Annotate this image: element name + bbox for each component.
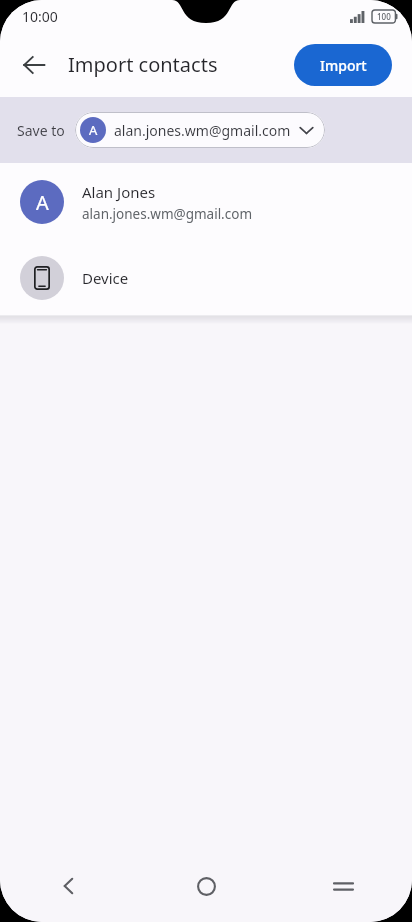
staticText: alan.jones.wm@gmail.com <box>114 121 291 140</box>
button[interactable]: A <box>0 163 412 241</box>
staticText: Import contacts <box>68 51 218 78</box>
staticText: alan.jones.wm@gmail.com <box>82 205 253 223</box>
staticText: 10:00 <box>22 7 58 26</box>
button[interactable]: A <box>75 112 325 148</box>
button[interactable]: Device <box>0 241 412 315</box>
button[interactable]: Back <box>0 858 138 914</box>
button[interactable]: Import <box>294 44 392 86</box>
staticText: Alan Jones <box>82 182 156 202</box>
staticText: Import <box>320 56 367 75</box>
staticText: A <box>89 121 98 139</box>
staticText: Device <box>82 268 129 288</box>
button[interactable]: Home <box>138 858 275 914</box>
button[interactable]: Back <box>10 41 58 89</box>
staticText: A <box>36 189 49 216</box>
staticText: Save to <box>17 121 65 140</box>
button[interactable]: Recent apps <box>275 858 412 914</box>
staticText: 100 <box>377 11 391 22</box>
